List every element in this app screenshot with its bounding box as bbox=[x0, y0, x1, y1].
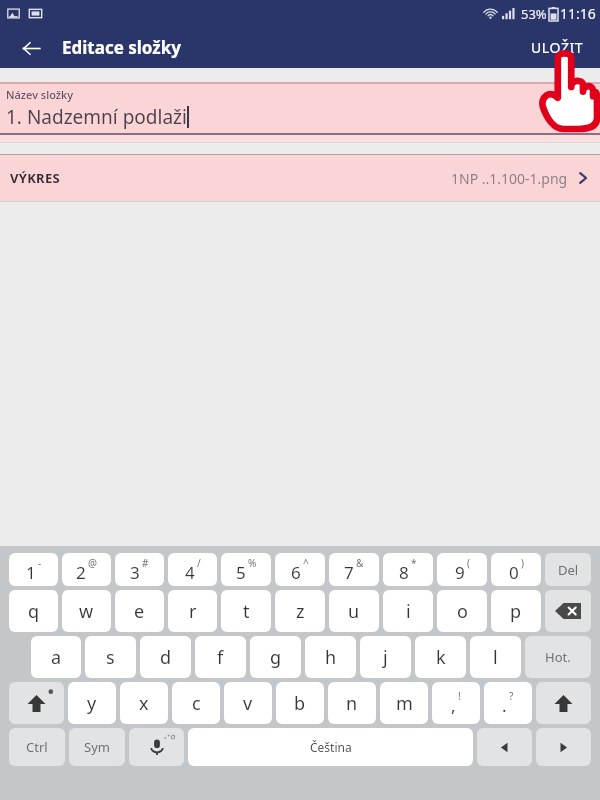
button[interactable]: h bbox=[305, 636, 356, 678]
button[interactable]: 0 bbox=[491, 553, 541, 586]
staticText: Del bbox=[558, 561, 579, 579]
staticText: p bbox=[510, 599, 522, 624]
button[interactable]: b bbox=[276, 682, 324, 724]
button[interactable]: n bbox=[328, 682, 376, 724]
button[interactable]: Hot. bbox=[525, 636, 591, 678]
button[interactable]: Sym bbox=[69, 728, 125, 766]
button[interactable]: Voice input bbox=[129, 728, 184, 766]
button[interactable]: Shift bbox=[536, 682, 591, 724]
staticText: 9 bbox=[455, 561, 465, 584]
button[interactable]: a bbox=[31, 636, 81, 678]
staticText: & bbox=[356, 556, 364, 570]
button[interactable]: 5 bbox=[221, 553, 271, 586]
button[interactable]: . bbox=[484, 682, 532, 724]
button[interactable]: 8 bbox=[383, 553, 433, 586]
button[interactable]: Čeština bbox=[188, 728, 473, 766]
staticText: 4 bbox=[185, 561, 195, 584]
staticText: Čeština bbox=[310, 739, 352, 755]
staticText: @ bbox=[88, 556, 97, 570]
staticText: d bbox=[160, 645, 172, 670]
button[interactable]: 3 bbox=[115, 553, 164, 586]
staticText: o bbox=[457, 599, 468, 624]
button[interactable]: Move right bbox=[536, 728, 591, 766]
button[interactable]: Move left bbox=[477, 728, 532, 766]
button[interactable]: VÝKRES bbox=[0, 155, 600, 201]
button[interactable]: k bbox=[415, 636, 466, 678]
button[interactable]: 4 bbox=[168, 553, 217, 586]
button[interactable]: j bbox=[360, 636, 411, 678]
staticText: j bbox=[383, 645, 388, 670]
button[interactable]: s bbox=[85, 636, 136, 678]
staticText: y bbox=[87, 691, 97, 716]
staticText: i bbox=[406, 599, 411, 624]
button[interactable]: q bbox=[9, 590, 58, 632]
staticText: 1. Nadzemní podlaži bbox=[6, 104, 187, 130]
staticText: a bbox=[51, 645, 62, 670]
staticText: Editace složky bbox=[62, 36, 181, 59]
staticText: z bbox=[296, 599, 305, 624]
staticText: 11:16 bbox=[560, 4, 596, 23]
staticText: g bbox=[270, 645, 282, 670]
staticText: ULOŽIT bbox=[531, 38, 584, 57]
button[interactable]: g bbox=[250, 636, 301, 678]
button[interactable]: ULOŽIT bbox=[515, 27, 600, 68]
staticText: ^ bbox=[303, 556, 309, 570]
staticText: b bbox=[294, 691, 306, 716]
staticText: m bbox=[396, 691, 413, 716]
button[interactable]: Del bbox=[545, 553, 591, 586]
button[interactable]: x bbox=[120, 682, 168, 724]
staticText: 5 bbox=[236, 561, 246, 584]
button[interactable]: Název složky bbox=[0, 82, 600, 143]
staticText: h bbox=[325, 645, 337, 670]
staticText: / bbox=[197, 556, 201, 570]
button[interactable]: o bbox=[437, 590, 487, 632]
staticText: 6 bbox=[291, 561, 301, 584]
button[interactable]: 2 bbox=[62, 553, 111, 586]
staticText: . bbox=[502, 694, 507, 717]
staticText: q bbox=[28, 599, 40, 624]
staticText: t bbox=[243, 599, 250, 624]
button[interactable]: f bbox=[195, 636, 246, 678]
button[interactable]: , bbox=[432, 682, 480, 724]
button[interactable]: Ctrl bbox=[9, 728, 65, 766]
staticText: ) bbox=[521, 556, 524, 570]
button[interactable]: d bbox=[140, 636, 191, 678]
button[interactable]: t bbox=[221, 590, 271, 632]
staticText: n bbox=[346, 691, 358, 716]
staticText: 53% bbox=[521, 5, 547, 23]
button[interactable]: 1 bbox=[9, 553, 58, 586]
staticText: % bbox=[248, 556, 257, 570]
staticText: Hot. bbox=[545, 648, 571, 666]
staticText: 1NP ..1.100-1.png bbox=[451, 169, 568, 188]
button[interactable]: 9 bbox=[437, 553, 487, 586]
button[interactable]: l bbox=[470, 636, 521, 678]
button[interactable]: e bbox=[115, 590, 164, 632]
staticText: # bbox=[142, 556, 149, 570]
button[interactable]: Back bbox=[12, 29, 50, 67]
staticText: 8 bbox=[399, 561, 409, 584]
staticText: w bbox=[79, 599, 94, 624]
staticText: l bbox=[493, 645, 498, 670]
button[interactable]: p bbox=[491, 590, 541, 632]
staticText: s bbox=[106, 645, 115, 670]
staticText: 3 bbox=[130, 561, 140, 584]
staticText: ? bbox=[509, 689, 514, 703]
button[interactable]: c bbox=[172, 682, 220, 724]
button[interactable]: m bbox=[380, 682, 428, 724]
button[interactable]: v bbox=[224, 682, 272, 724]
button[interactable]: y bbox=[68, 682, 116, 724]
staticText: v bbox=[243, 691, 253, 716]
staticText: c bbox=[192, 691, 201, 716]
button[interactable]: w bbox=[62, 590, 111, 632]
button[interactable]: Backspace bbox=[545, 590, 591, 632]
staticText: Ctrl bbox=[26, 738, 48, 756]
button[interactable]: u bbox=[329, 590, 379, 632]
button[interactable]: r bbox=[168, 590, 217, 632]
button[interactable]: 6 bbox=[275, 553, 325, 586]
button[interactable]: z bbox=[275, 590, 325, 632]
staticText: f bbox=[217, 645, 224, 670]
button[interactable]: i bbox=[383, 590, 433, 632]
button[interactable]: 7 bbox=[329, 553, 379, 586]
button[interactable]: Shift bbox=[9, 682, 64, 724]
staticText: r bbox=[189, 599, 197, 624]
